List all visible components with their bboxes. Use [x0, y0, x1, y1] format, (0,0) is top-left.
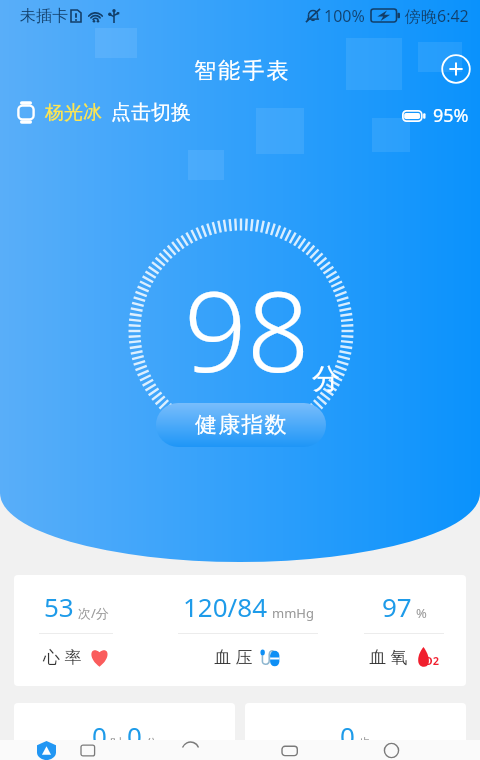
staticText: 120/84	[183, 589, 268, 624]
staticText: 53	[44, 589, 74, 624]
staticText: 步	[358, 735, 371, 751]
button[interactable]: Screenshot	[78, 740, 100, 760]
staticText: 0	[92, 718, 107, 753]
staticText: 健康指数	[195, 411, 288, 439]
staticText: 分	[312, 361, 340, 396]
staticText: 98	[184, 254, 310, 404]
button[interactable]: 53	[14, 575, 138, 686]
staticText: 血 氧	[369, 645, 408, 668]
staticText: 分	[145, 735, 158, 751]
staticText: 血 压	[214, 645, 253, 668]
staticText: 0	[127, 718, 142, 753]
staticText: 97	[382, 589, 412, 624]
staticText: 心 率	[43, 645, 82, 668]
staticText: 时	[110, 735, 123, 751]
staticText: 100%	[324, 5, 365, 27]
button[interactable]: 97	[348, 575, 460, 686]
button[interactable]: Recents	[279, 740, 301, 760]
button[interactable]: Home	[380, 740, 402, 760]
staticText: 0	[340, 718, 355, 753]
staticText: 未插卡	[20, 6, 68, 26]
staticText: mmHg	[272, 604, 314, 622]
button[interactable]: Back	[179, 740, 201, 760]
button[interactable]: 0	[14, 703, 235, 760]
button[interactable]: Add device	[437, 50, 475, 88]
staticText: %	[416, 604, 427, 622]
button[interactable]: 0	[245, 703, 466, 760]
staticText: 点击切换	[111, 100, 191, 125]
button[interactable]: 杨光冰	[13, 96, 195, 129]
staticText: O2	[424, 653, 439, 668]
staticText: 95%	[433, 103, 469, 128]
button[interactable]: 健康指数	[156, 403, 326, 447]
button[interactable]: 120/84	[140, 575, 356, 686]
staticText: 次/分	[78, 604, 109, 622]
staticText: 智能手表	[194, 57, 291, 85]
staticText: 傍晚6:42	[405, 5, 469, 27]
staticText: 杨光冰	[45, 101, 102, 125]
